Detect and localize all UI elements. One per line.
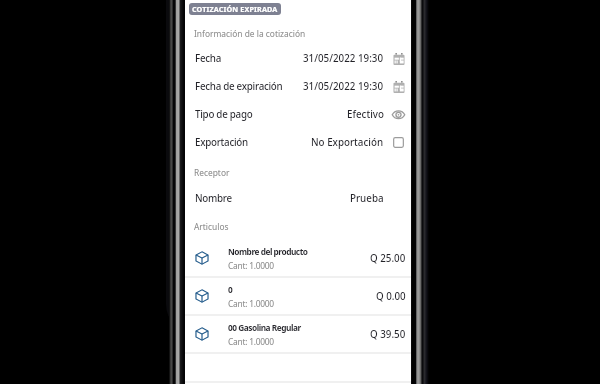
button[interactable]: Producto <box>185 240 411 276</box>
staticText: Q 25.00 <box>370 252 406 265</box>
button[interactable]: Exportación <box>393 137 404 148</box>
other: Producto <box>195 327 209 341</box>
staticText: Cant: 1.0000 <box>228 336 274 347</box>
staticText: 00 Gasolina Regular <box>228 322 301 333</box>
other: Producto <box>195 251 209 265</box>
staticText: Cant: 1.0000 <box>228 298 274 309</box>
button[interactable]: Fecha <box>185 44 411 72</box>
button[interactable]: COTIZACIÓN EXPIRADA <box>189 3 281 15</box>
button[interactable]: Producto <box>185 278 411 314</box>
staticText: Fecha de expiración <box>195 80 283 93</box>
staticText: Cant: 1.0000 <box>228 260 274 271</box>
staticText: Articulos <box>194 221 229 232</box>
button[interactable]: Nombre <box>185 184 411 212</box>
staticText: Nombre <box>195 192 232 205</box>
staticText: Receptor <box>194 167 230 178</box>
other: Producto <box>195 289 209 303</box>
staticText: Fecha <box>195 52 221 65</box>
staticText: No Exportación <box>311 136 384 149</box>
button[interactable]: Tipo de pago <box>185 100 411 128</box>
other: Calendario <box>393 53 405 65</box>
other: Calendario <box>393 81 405 93</box>
staticText: COTIZACIÓN EXPIRADA <box>192 4 278 14</box>
staticText: 31/05/2022 19:30 <box>303 52 384 65</box>
staticText: Prueba <box>350 192 384 205</box>
staticText: Nombre del producto <box>228 246 308 257</box>
staticText: Tipo de pago <box>195 108 253 121</box>
other: Visibilidad <box>392 108 405 121</box>
button[interactable]: Producto <box>185 316 411 352</box>
button[interactable]: Fecha de expiración <box>185 72 411 100</box>
staticText: Exportación <box>195 136 248 149</box>
staticText: Q 39.50 <box>370 328 406 341</box>
staticText: 0 <box>228 284 233 295</box>
staticText: Información de la cotización <box>194 28 306 39</box>
button[interactable]: Exportación <box>185 128 411 156</box>
staticText: 31/05/2022 19:30 <box>303 80 384 93</box>
staticText: Q 0.00 <box>376 290 406 303</box>
staticText: Efectivo <box>347 108 384 121</box>
